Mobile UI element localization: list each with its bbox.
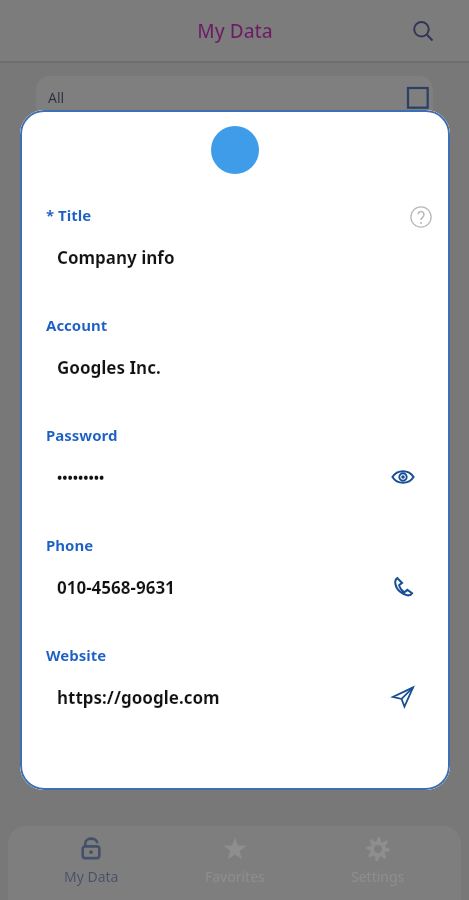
staticText: Password xyxy=(46,425,118,445)
staticText: My Data xyxy=(197,18,273,44)
staticText: Googles Inc. xyxy=(57,356,161,379)
button[interactable]: https://google.com xyxy=(38,673,432,721)
button[interactable]: Company info xyxy=(38,233,432,281)
staticText: Phone xyxy=(46,535,94,555)
button[interactable]: Show password xyxy=(386,460,420,494)
staticText: Website xyxy=(46,645,107,665)
staticText: Settings xyxy=(351,867,405,886)
staticText: Company info xyxy=(57,246,175,269)
staticText: Account xyxy=(46,315,108,335)
button[interactable]: Open website xyxy=(386,680,420,714)
button[interactable]: Favorites xyxy=(175,836,295,900)
staticText: My Data xyxy=(64,867,119,886)
button[interactable]: 010-4568-9631 xyxy=(38,563,432,611)
staticText: https://google.com xyxy=(57,686,220,709)
button[interactable]: Help xyxy=(410,206,432,228)
staticText: ••••••••• xyxy=(57,468,105,487)
button[interactable]: Call xyxy=(386,570,420,604)
button[interactable]: Search xyxy=(403,11,443,51)
button[interactable]: Settings xyxy=(318,836,438,900)
staticText: All xyxy=(48,88,65,107)
button[interactable]: Googles Inc. xyxy=(38,343,432,391)
staticText: Favorites xyxy=(205,867,265,886)
staticText: 010-4568-9631 xyxy=(57,576,175,599)
button[interactable]: ••••••••• xyxy=(38,453,432,501)
staticText: * Title xyxy=(46,205,92,225)
button[interactable]: Avatar xyxy=(211,126,259,174)
button[interactable]: My Data xyxy=(31,836,151,900)
